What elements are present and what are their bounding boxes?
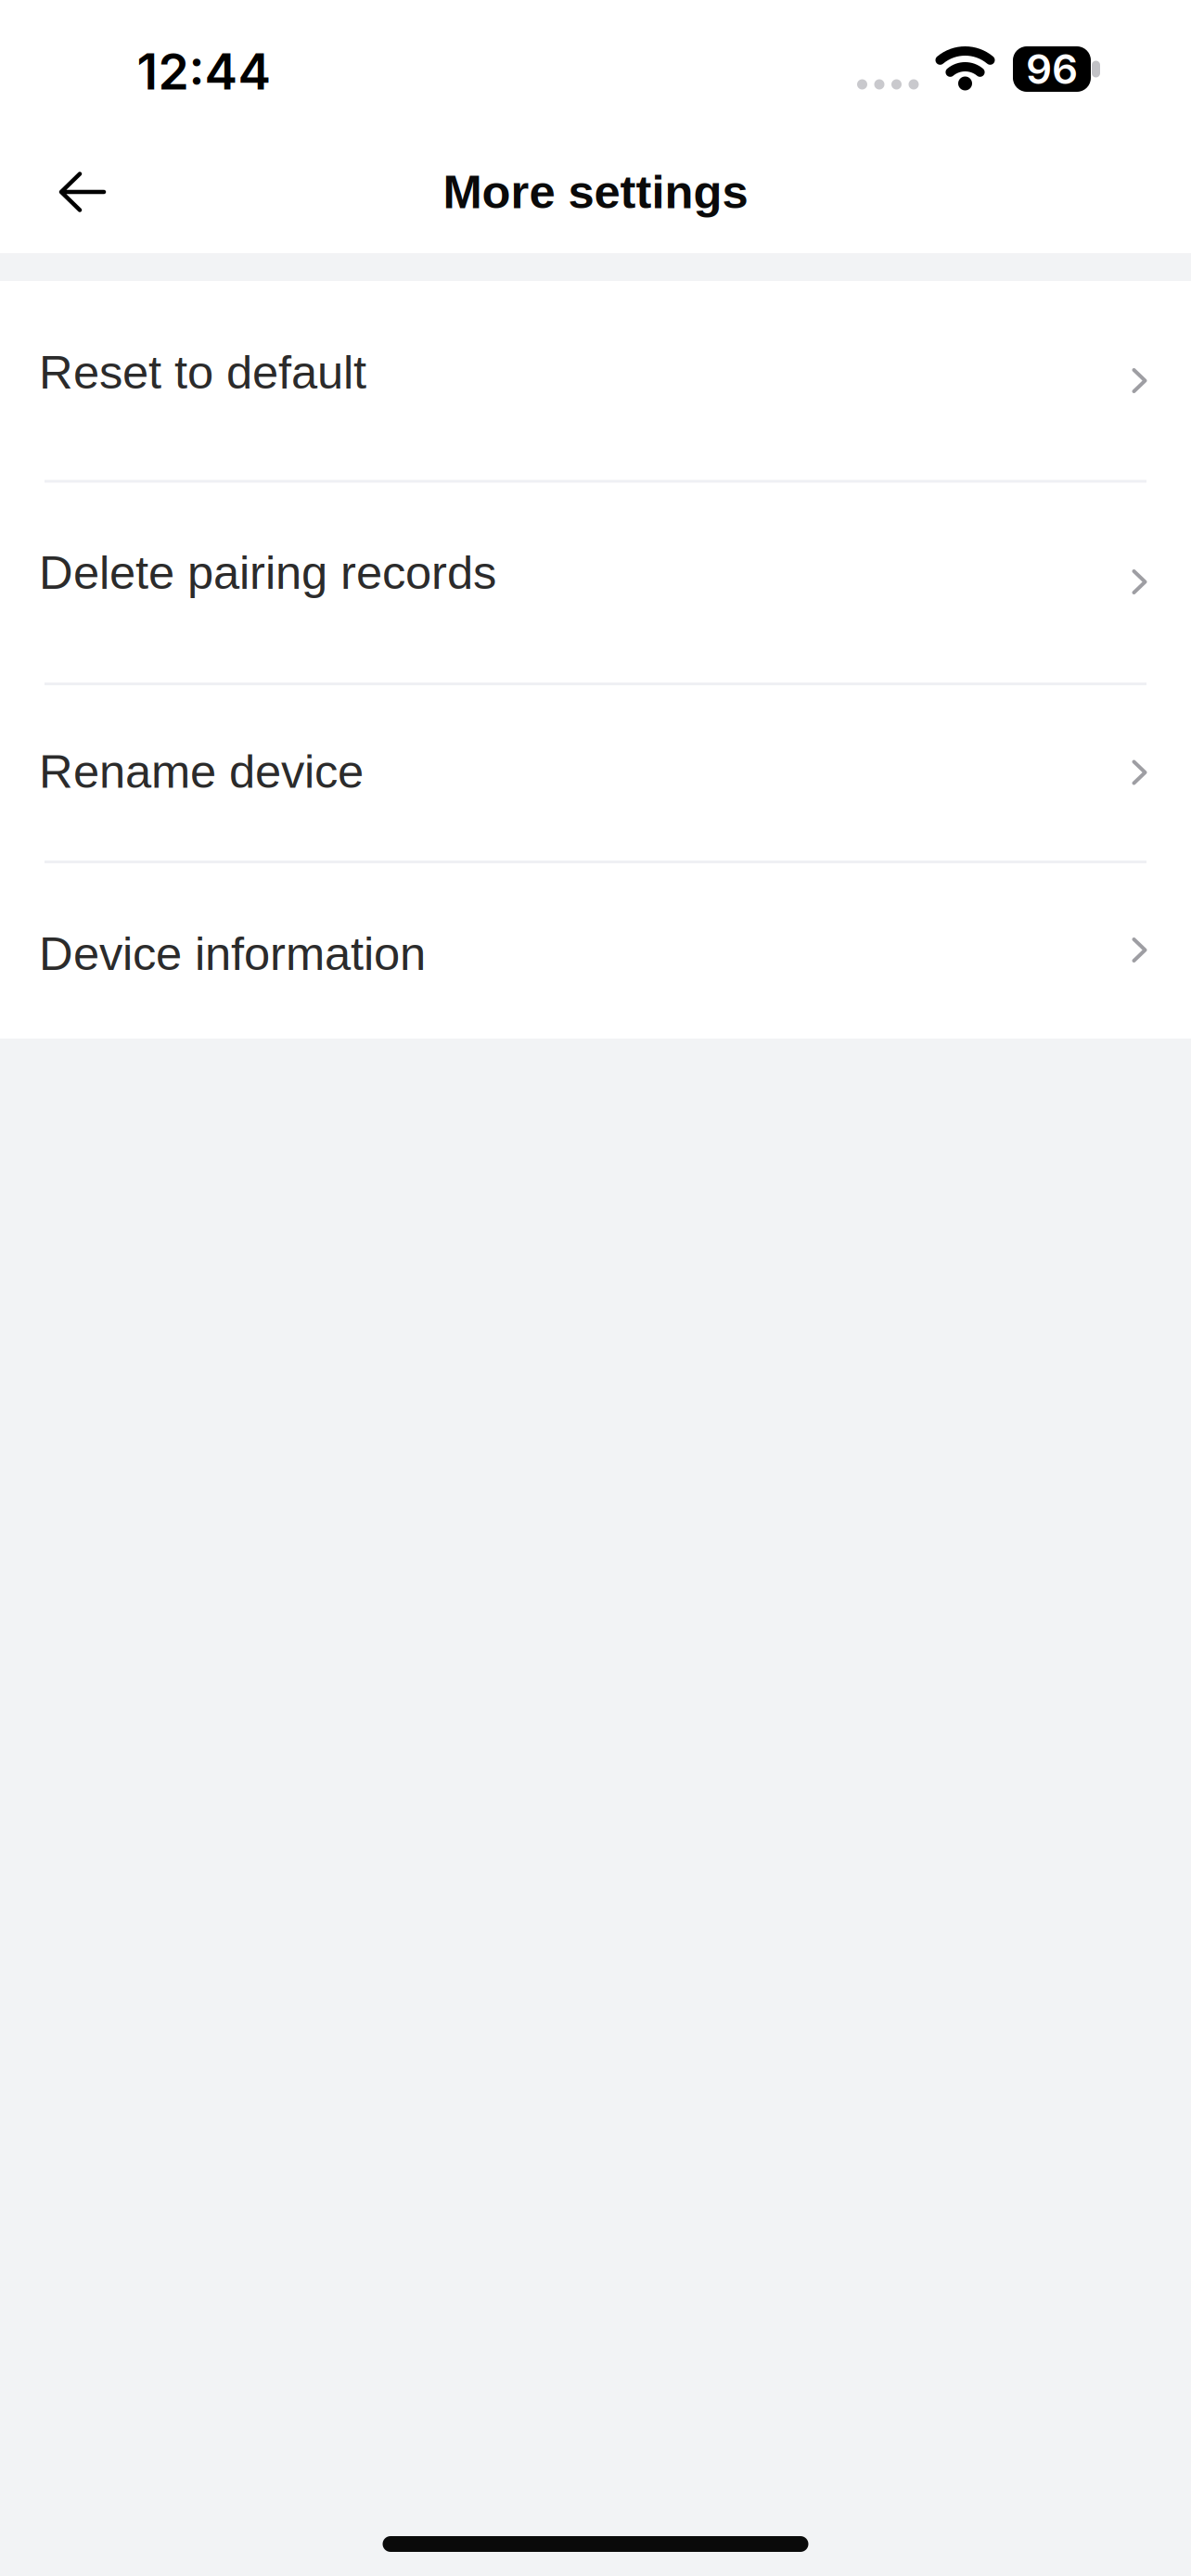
- staticText: Reset to default: [39, 346, 366, 399]
- button[interactable]: Back: [36, 146, 129, 238]
- button[interactable]: Rename device: [0, 683, 1191, 861]
- staticText: 12:44: [137, 41, 271, 101]
- staticText: Delete pairing records: [39, 546, 496, 599]
- staticText: 96: [1026, 44, 1078, 94]
- button[interactable]: Delete pairing records: [0, 480, 1191, 683]
- button[interactable]: Device information: [0, 861, 1191, 1039]
- staticText: Rename device: [39, 745, 364, 798]
- staticText: Device information: [39, 927, 426, 980]
- button[interactable]: Reset to default: [0, 281, 1191, 480]
- staticText: More settings: [443, 166, 748, 218]
